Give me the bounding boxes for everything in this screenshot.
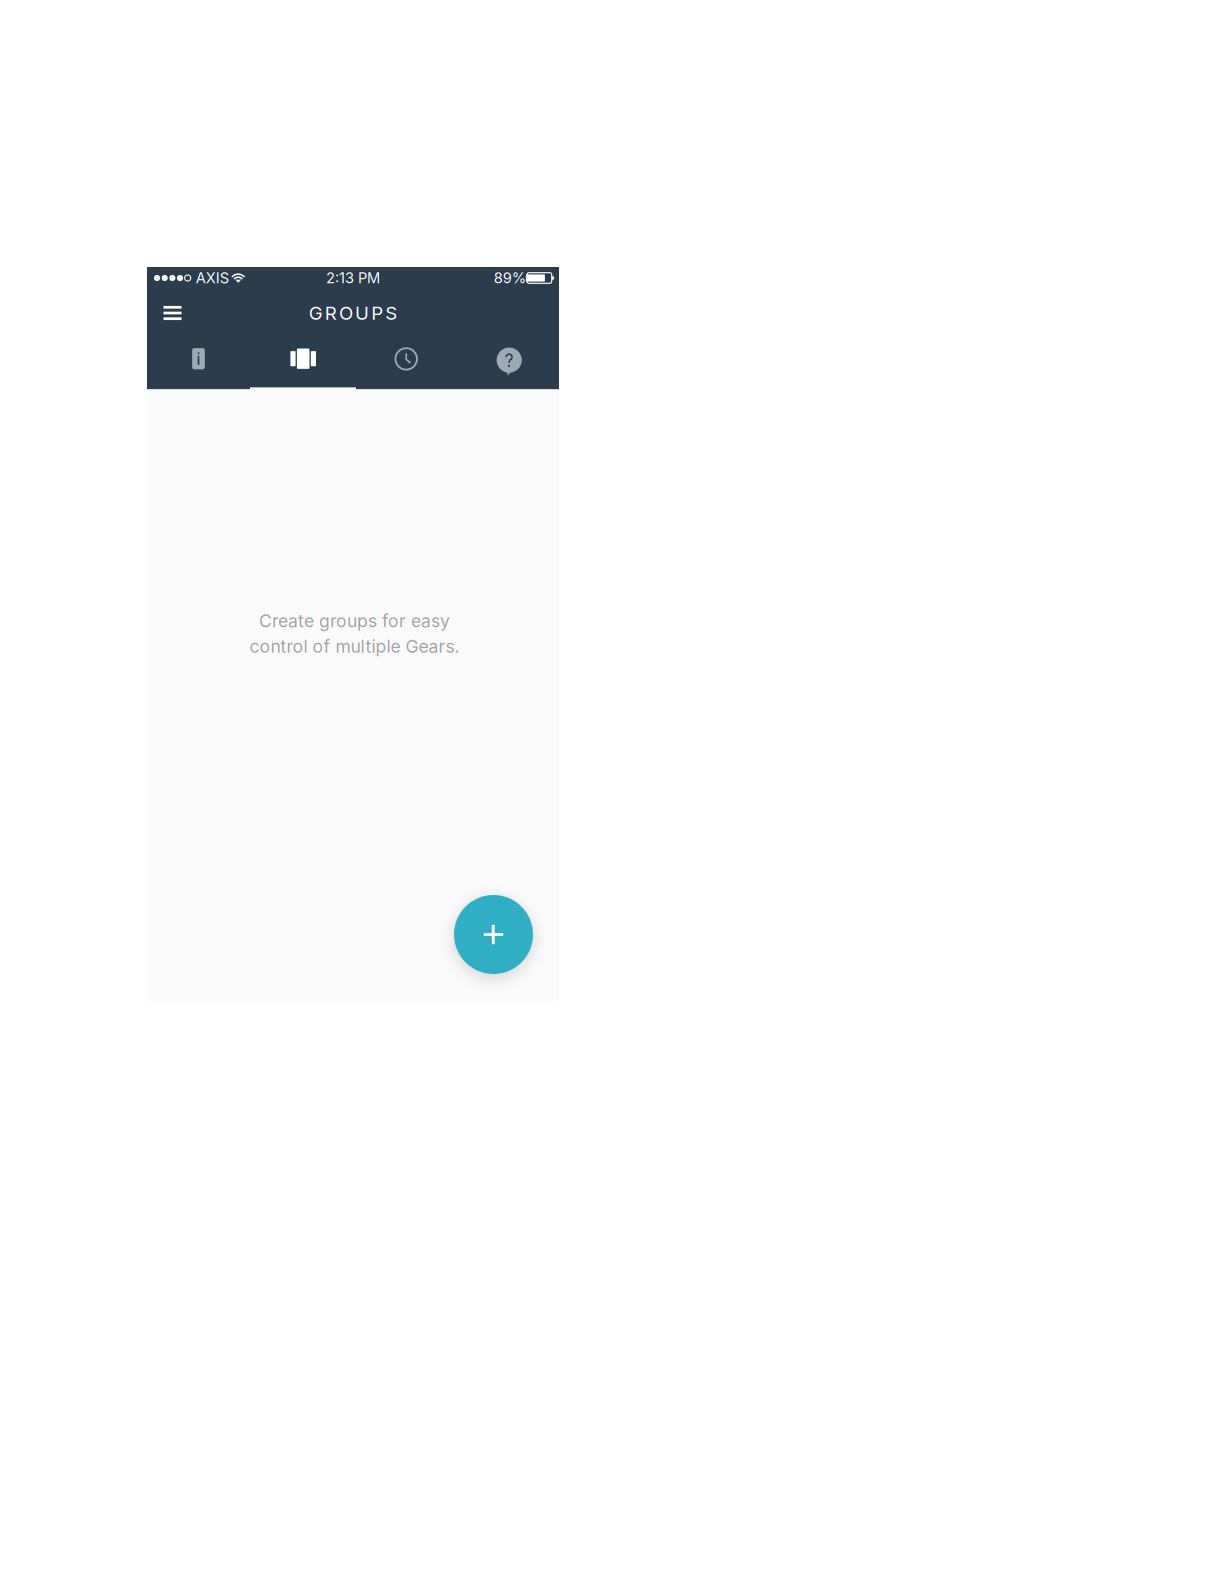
button[interactable]: Schedules bbox=[353, 337, 456, 389]
button[interactable]: Devices bbox=[147, 337, 250, 389]
staticText: AXIS bbox=[196, 269, 229, 287]
button[interactable]: Add group bbox=[454, 895, 533, 974]
button[interactable]: Groups bbox=[250, 337, 353, 389]
button[interactable]: Menu bbox=[147, 289, 205, 337]
staticText: control of multiple Gears. bbox=[249, 636, 459, 657]
staticText: GROUPS bbox=[309, 302, 397, 324]
staticText: 2:13 PM bbox=[326, 269, 380, 287]
button[interactable]: Help bbox=[456, 337, 559, 389]
staticText: 89% bbox=[494, 269, 526, 287]
staticText: Create groups for easy bbox=[259, 610, 450, 632]
